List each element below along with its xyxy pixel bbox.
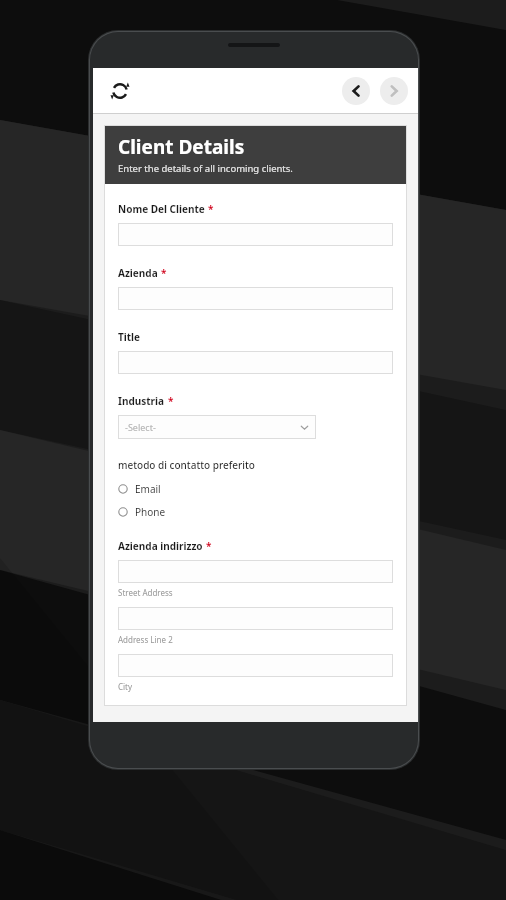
staticText: Address Line 2: [118, 634, 173, 645]
staticText: Azienda: [118, 266, 158, 280]
staticText: Title: [118, 330, 141, 344]
staticText: *: [161, 266, 167, 280]
staticText: *: [208, 202, 214, 216]
staticText: Enter the details of all incoming client…: [118, 162, 293, 175]
button[interactable]: Back: [342, 77, 370, 105]
button[interactable]: [118, 560, 393, 583]
staticText: Email: [135, 482, 161, 496]
staticText: *: [206, 539, 212, 553]
button[interactable]: [118, 287, 393, 310]
staticText: Azienda indirizzo: [118, 539, 203, 553]
staticText: City: [118, 681, 133, 692]
button[interactable]: [118, 654, 393, 677]
button[interactable]: [118, 351, 393, 374]
button[interactable]: Refresh: [103, 74, 137, 108]
button[interactable]: [118, 607, 393, 630]
button[interactable]: Email: [118, 482, 161, 496]
staticText: *: [168, 394, 174, 408]
staticText: Nome Del Cliente: [118, 202, 205, 216]
staticText: Industria: [118, 394, 165, 408]
staticText: Phone: [135, 505, 166, 519]
staticText: metodo di contatto preferito: [118, 458, 255, 472]
button[interactable]: [118, 223, 393, 246]
staticText: Client Details: [118, 134, 245, 160]
staticText: -Select-: [125, 421, 156, 433]
button[interactable]: Phone: [118, 505, 166, 519]
staticText: Street Address: [118, 587, 173, 598]
button[interactable]: -Select-: [118, 415, 316, 439]
button[interactable]: Forward: [380, 77, 408, 105]
